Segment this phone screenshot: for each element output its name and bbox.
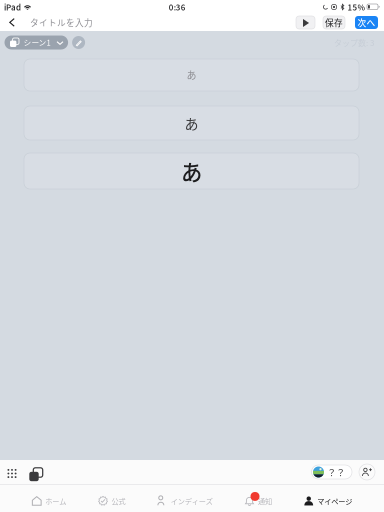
button[interactable]: シーン1 (4, 35, 68, 49)
staticText: 通知 (258, 496, 272, 506)
staticText: あ (181, 156, 202, 186)
button[interactable]: Scenes (27, 457, 45, 486)
staticText: 15% (347, 1, 365, 13)
button[interactable]: インディーズ (157, 485, 213, 512)
staticText: タイトルを入力 (30, 16, 93, 29)
staticText: ホーム (45, 496, 66, 506)
button[interactable]: ホーム (32, 485, 66, 512)
button[interactable]: あ (24, 106, 359, 140)
button[interactable]: マイページ (304, 485, 352, 512)
button[interactable]: 通知 (244, 485, 272, 512)
staticText: 次へ (357, 16, 375, 29)
staticText: あ (184, 113, 198, 133)
button[interactable]: 公式 (98, 485, 125, 512)
staticText: 公式 (111, 496, 125, 506)
staticText: インディーズ (171, 496, 213, 506)
button[interactable]: Apps (4, 458, 20, 485)
staticText: あ (186, 68, 196, 82)
staticText: 0:36 (169, 1, 186, 13)
staticText: マイページ (317, 496, 352, 506)
button[interactable]: 次へ (355, 16, 378, 29)
staticText: タップ数: 3 (334, 37, 374, 48)
staticText: iPad (4, 1, 21, 13)
staticText: 保存 (325, 16, 343, 29)
button[interactable]: ？？ (311, 465, 352, 479)
button[interactable]: あ (24, 153, 359, 189)
button[interactable]: Edit scene (72, 36, 85, 49)
staticText: シーン1 (23, 37, 50, 48)
button[interactable]: あ (24, 59, 359, 91)
button[interactable]: Back (3, 14, 21, 31)
staticText: ？？ (327, 465, 345, 479)
button[interactable]: Play (296, 16, 315, 29)
button[interactable]: Invite (359, 464, 375, 480)
button[interactable]: 保存 (323, 16, 345, 29)
